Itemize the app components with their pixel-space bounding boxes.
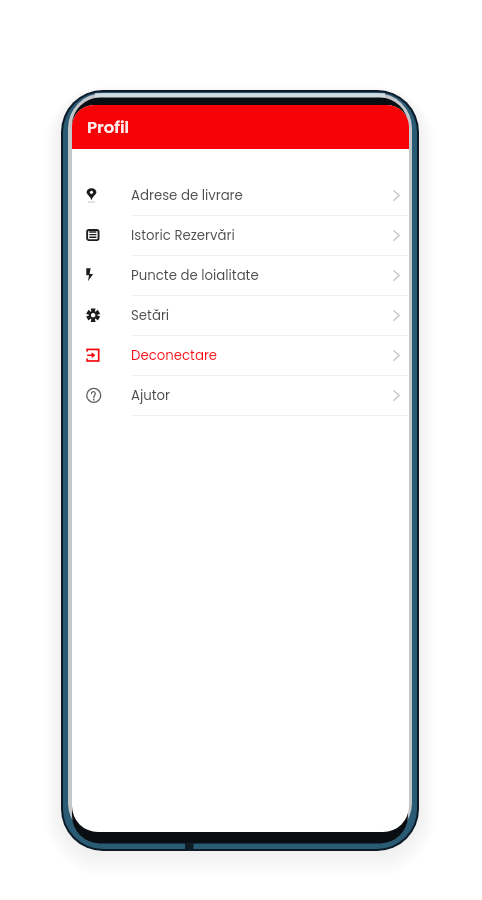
staticText: Deconectare: [131, 346, 218, 365]
button[interactable]: Puncte de loialitate: [72, 256, 409, 296]
staticText: Adrese de livrare: [131, 186, 243, 205]
staticText: Istoric Rezervări: [131, 226, 235, 245]
button[interactable]: Ajutor: [72, 376, 409, 416]
button[interactable]: Deconectare: [72, 336, 409, 376]
staticText: Profil: [87, 116, 130, 139]
staticText: Puncte de loialitate: [131, 266, 259, 285]
button[interactable]: Setări: [72, 296, 409, 336]
staticText: Setări: [131, 306, 170, 325]
button[interactable]: Adrese de livrare: [72, 176, 409, 216]
staticText: Ajutor: [131, 386, 171, 405]
button[interactable]: Istoric Rezervări: [72, 216, 409, 256]
